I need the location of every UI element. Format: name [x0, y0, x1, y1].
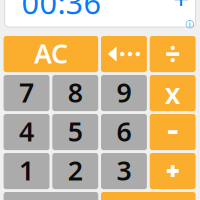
- staticText: 7: [19, 74, 34, 110]
- button[interactable]: 2: [52, 153, 98, 189]
- staticText: i: [189, 19, 191, 29]
- button[interactable]: 3: [101, 153, 147, 189]
- staticText: 5: [68, 113, 83, 149]
- button[interactable]: AC: [4, 36, 98, 72]
- button[interactable]: Add: [150, 153, 196, 189]
- button[interactable]: 7: [4, 75, 49, 111]
- staticText: 4: [19, 113, 34, 149]
- staticText: x: [165, 74, 181, 112]
- staticText: 9: [116, 74, 131, 110]
- staticText: AC: [34, 35, 68, 71]
- staticText: 1: [19, 152, 34, 188]
- button[interactable]: 4: [4, 114, 49, 150]
- staticText: 6: [116, 113, 131, 149]
- button[interactable]: 5: [52, 114, 98, 150]
- button[interactable]: Divide: [150, 36, 196, 72]
- staticText: 00:36: [22, 0, 102, 23]
- staticText: 2: [68, 152, 83, 188]
- button[interactable]: 9: [101, 75, 147, 111]
- staticText: 3: [116, 152, 131, 188]
- button[interactable]: Equals: [101, 192, 196, 200]
- button[interactable]: Info: [186, 20, 194, 28]
- button[interactable]: Subtract: [150, 114, 196, 150]
- button[interactable]: 8: [52, 75, 98, 111]
- staticText: 8: [68, 74, 83, 110]
- button[interactable]: 1: [4, 153, 49, 189]
- button[interactable]: Add: [171, 0, 191, 8]
- button[interactable]: Delete: [101, 36, 147, 72]
- staticText: +: [173, 0, 189, 17]
- button[interactable]: 6: [101, 114, 147, 150]
- button[interactable]: Multiply: [150, 75, 196, 111]
